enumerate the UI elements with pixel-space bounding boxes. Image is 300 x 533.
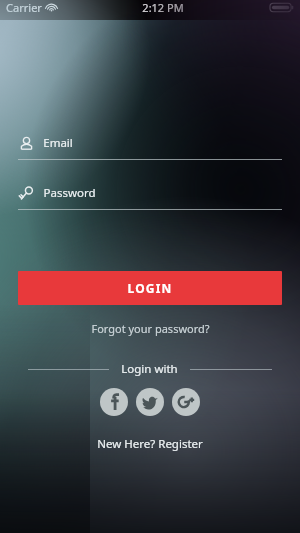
staticText: Forgot your password? <box>91 321 210 336</box>
button[interactable]: Forgot your password? <box>0 318 300 339</box>
staticText: LOGIN <box>127 280 173 296</box>
button[interactable]: New Here? Register <box>0 433 300 455</box>
staticText: Email <box>43 135 73 151</box>
staticText: New Here? Register <box>97 436 203 452</box>
button[interactable]: Password <box>18 182 282 210</box>
staticText: Password <box>43 185 96 201</box>
button[interactable]: LOGIN <box>18 271 282 305</box>
button[interactable]: Email <box>18 132 282 160</box>
staticText: 2:12 PM <box>142 0 184 15</box>
staticText: Login with <box>121 361 178 377</box>
button[interactable]: Login with Google Plus <box>172 388 200 416</box>
button[interactable]: Login with Facebook <box>100 388 128 416</box>
button[interactable]: Login with Twitter <box>136 388 164 416</box>
staticText: Carrier <box>6 0 42 15</box>
